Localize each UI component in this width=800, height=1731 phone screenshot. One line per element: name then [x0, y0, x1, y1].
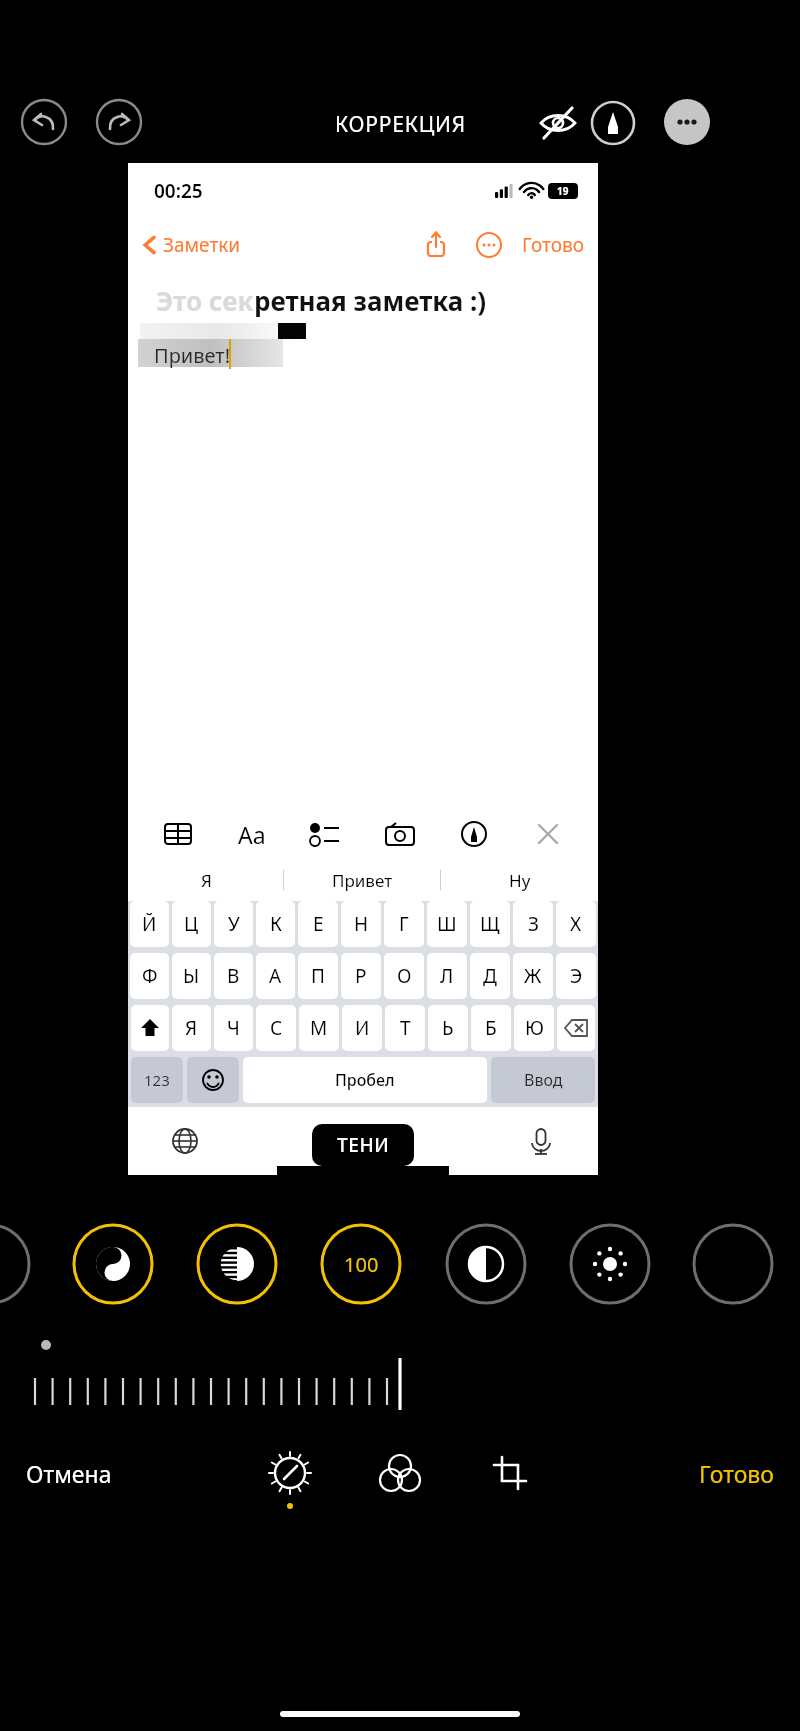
- button[interactable]: Markup: [588, 98, 638, 148]
- button[interactable]: Hide markup: [533, 98, 583, 148]
- button[interactable]: Dictate: [524, 1124, 558, 1158]
- button[interactable]: Я: [172, 1005, 211, 1051]
- button[interactable]: Ввод: [491, 1057, 595, 1103]
- button[interactable]: Отмена: [26, 1458, 112, 1489]
- staticText: 123: [144, 1070, 170, 1090]
- button[interactable]: More options: [663, 98, 711, 146]
- button[interactable]: Привет: [284, 859, 441, 901]
- staticText: Й: [142, 911, 157, 937]
- staticText: И: [355, 1015, 370, 1041]
- button[interactable]: Adjustment 0: [0, 1222, 32, 1306]
- button[interactable]: Ну: [441, 859, 598, 901]
- staticText: Ь: [442, 1015, 454, 1041]
- staticText: Пробел: [335, 1069, 395, 1091]
- staticText: Ы: [183, 963, 200, 989]
- button[interactable]: Д: [470, 953, 510, 999]
- staticText: Ш: [437, 911, 457, 937]
- staticText: Привет: [332, 869, 393, 892]
- staticText: Ж: [524, 963, 542, 989]
- button[interactable]: Table: [158, 814, 198, 854]
- staticText: Р: [355, 963, 367, 989]
- button[interactable]: С: [256, 1005, 296, 1051]
- button[interactable]: Ж: [513, 953, 553, 999]
- button[interactable]: Готово: [699, 1458, 774, 1489]
- button[interactable]: Change language: [168, 1124, 202, 1158]
- button[interactable]: Markup: [454, 814, 494, 854]
- button[interactable]: More: [472, 228, 506, 262]
- button[interactable]: Э: [556, 953, 596, 999]
- button[interactable]: З: [513, 901, 553, 947]
- staticText: Е: [313, 911, 324, 937]
- button[interactable]: Е: [298, 901, 338, 947]
- button[interactable]: Undo: [20, 98, 68, 146]
- button[interactable]: Готово: [522, 232, 584, 258]
- button[interactable]: Adjustment 1: [71, 1222, 155, 1306]
- staticText: КОРРЕКЦИЯ: [335, 110, 466, 139]
- staticText: Привет!: [154, 342, 231, 369]
- button[interactable]: Adjustment 5: [568, 1222, 652, 1306]
- button[interactable]: Aa: [232, 814, 272, 854]
- button[interactable]: Camera: [380, 814, 420, 854]
- button[interactable]: Key: [187, 1057, 239, 1103]
- staticText: Это сек: [156, 283, 254, 318]
- button[interactable]: Щ: [470, 901, 510, 947]
- button[interactable]: Ю: [514, 1005, 554, 1051]
- staticText: Ц: [184, 911, 199, 937]
- button[interactable]: Adjustment 4: [444, 1222, 528, 1306]
- button[interactable]: 123: [131, 1057, 183, 1103]
- button[interactable]: Share: [418, 227, 454, 263]
- button[interactable]: Adjustment 2: [195, 1222, 279, 1306]
- button[interactable]: Ы: [172, 953, 211, 999]
- button[interactable]: В: [214, 953, 253, 999]
- staticText: ТЕНИ: [337, 1132, 390, 1158]
- button[interactable]: Пробел: [243, 1057, 487, 1103]
- staticText: ретная заметка :): [254, 283, 487, 318]
- staticText: У: [228, 911, 240, 937]
- button[interactable]: Б: [471, 1005, 511, 1051]
- button[interactable]: Adjustment 3: [319, 1222, 403, 1306]
- button[interactable]: Close keyboard: [528, 814, 568, 854]
- staticText: Э: [570, 963, 583, 989]
- button[interactable]: Key: [131, 1005, 169, 1051]
- button[interactable]: И: [342, 1005, 382, 1051]
- staticText: В: [227, 963, 240, 989]
- staticText: К: [270, 911, 282, 937]
- button[interactable]: Ф: [130, 953, 169, 999]
- button[interactable]: Filters: [370, 1443, 430, 1503]
- staticText: Х: [570, 911, 582, 937]
- button[interactable]: О: [384, 953, 424, 999]
- button[interactable]: Ц: [172, 901, 211, 947]
- button[interactable]: Checklist: [306, 814, 346, 854]
- button[interactable]: Я: [128, 859, 284, 901]
- button[interactable]: У: [214, 901, 253, 947]
- button[interactable]: К: [256, 901, 295, 947]
- button[interactable]: Н: [341, 901, 381, 947]
- staticText: Ч: [227, 1015, 240, 1041]
- staticText: Б: [485, 1015, 497, 1041]
- staticText: Ю: [525, 1015, 544, 1041]
- button[interactable]: Заметки: [142, 232, 241, 258]
- staticText: Л: [440, 963, 454, 989]
- staticText: Ф: [142, 963, 158, 989]
- button[interactable]: Ч: [214, 1005, 253, 1051]
- button[interactable]: П: [298, 953, 338, 999]
- button[interactable]: Crop: [480, 1443, 540, 1503]
- button[interactable]: Т: [385, 1005, 425, 1051]
- button[interactable]: Ь: [428, 1005, 468, 1051]
- button[interactable]: Redo: [95, 98, 143, 146]
- button[interactable]: Х: [556, 901, 596, 947]
- button[interactable]: М: [299, 1005, 339, 1051]
- button[interactable]: Adjust: [260, 1443, 320, 1503]
- button[interactable]: Key: [557, 1005, 595, 1051]
- button[interactable]: Й: [130, 901, 169, 947]
- staticText: М: [310, 1015, 328, 1041]
- button[interactable]: Ш: [427, 901, 467, 947]
- button[interactable]: Adjustment 6: [691, 1222, 775, 1306]
- button[interactable]: Л: [427, 953, 467, 999]
- staticText: Я: [185, 1015, 198, 1041]
- staticText: Я: [201, 869, 212, 892]
- button[interactable]: Г: [384, 901, 424, 947]
- staticText: О: [397, 963, 412, 989]
- button[interactable]: Р: [341, 953, 381, 999]
- button[interactable]: А: [256, 953, 295, 999]
